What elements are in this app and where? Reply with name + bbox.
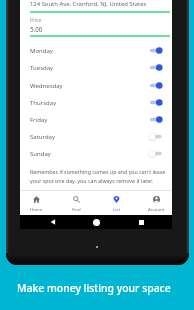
staticText: Account	[148, 206, 165, 212]
other: Back	[50, 219, 56, 225]
staticText: Wednesday	[30, 82, 63, 90]
staticText: Sunday	[30, 150, 51, 158]
staticText: Make money listing your space	[17, 281, 171, 295]
staticText: Remember, if something comes up and you …	[30, 168, 166, 185]
staticText: Find	[72, 206, 81, 212]
staticText: Saturday	[30, 133, 56, 141]
button[interactable]: Find	[57, 190, 95, 215]
button[interactable]: Wednesday	[20, 77, 172, 94]
staticText: Home	[30, 206, 43, 212]
staticText: Price	[30, 17, 42, 24]
button[interactable]: Saturday	[20, 128, 172, 145]
staticText: Tuesday	[30, 64, 54, 72]
staticText: Friday	[30, 116, 48, 124]
staticText: Monday	[30, 47, 53, 55]
button[interactable]: Home	[17, 190, 55, 215]
other: Home	[93, 219, 100, 226]
button[interactable]: Sunday	[20, 145, 172, 162]
button[interactable]: Friday	[20, 111, 172, 128]
staticText: List	[113, 206, 120, 212]
button[interactable]: Tuesday	[20, 59, 172, 76]
staticText: Thursday	[30, 99, 57, 107]
button[interactable]: Thursday	[20, 94, 172, 111]
button[interactable]: Account	[137, 190, 175, 215]
staticText: 124 South Ave, Cranford, NJ, United Stat…	[30, 0, 147, 8]
button[interactable]: List	[97, 190, 135, 215]
staticText: 5.00	[30, 25, 43, 33]
button[interactable]: Monday	[20, 42, 172, 59]
